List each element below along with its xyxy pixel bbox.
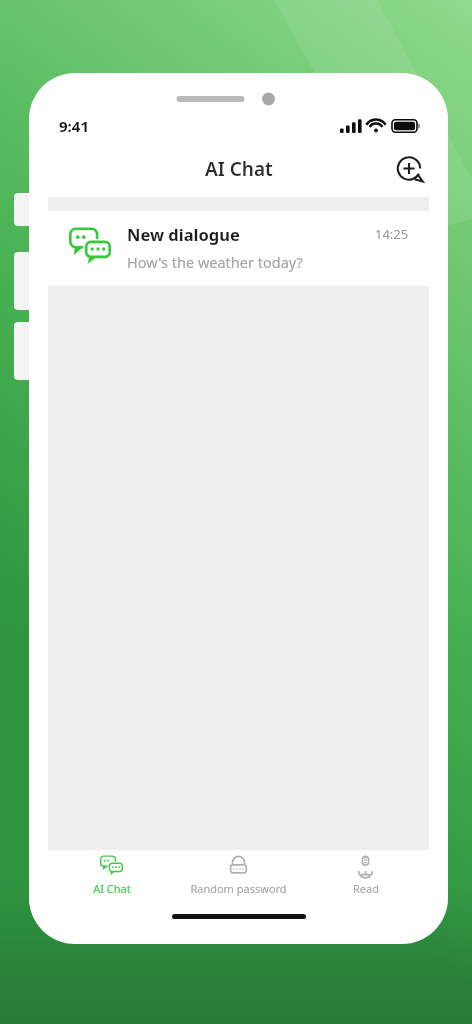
staticText: New dialogue — [127, 223, 240, 245]
staticText: How's the weather today? — [127, 252, 303, 272]
button[interactable]: Read — [302, 850, 429, 900]
staticText: Read — [353, 881, 379, 896]
staticText: Random password — [190, 881, 287, 896]
staticText: 14:25 — [375, 225, 409, 243]
staticText: AI Chat — [93, 881, 131, 896]
staticText: AI Chat — [205, 156, 273, 182]
button[interactable]: AI Chat — [48, 850, 175, 900]
button[interactable]: Random password — [175, 850, 302, 900]
staticText: 9:41 — [59, 116, 89, 136]
button[interactable]: New dialogue — [48, 211, 429, 286]
button[interactable]: New chat — [392, 152, 426, 186]
